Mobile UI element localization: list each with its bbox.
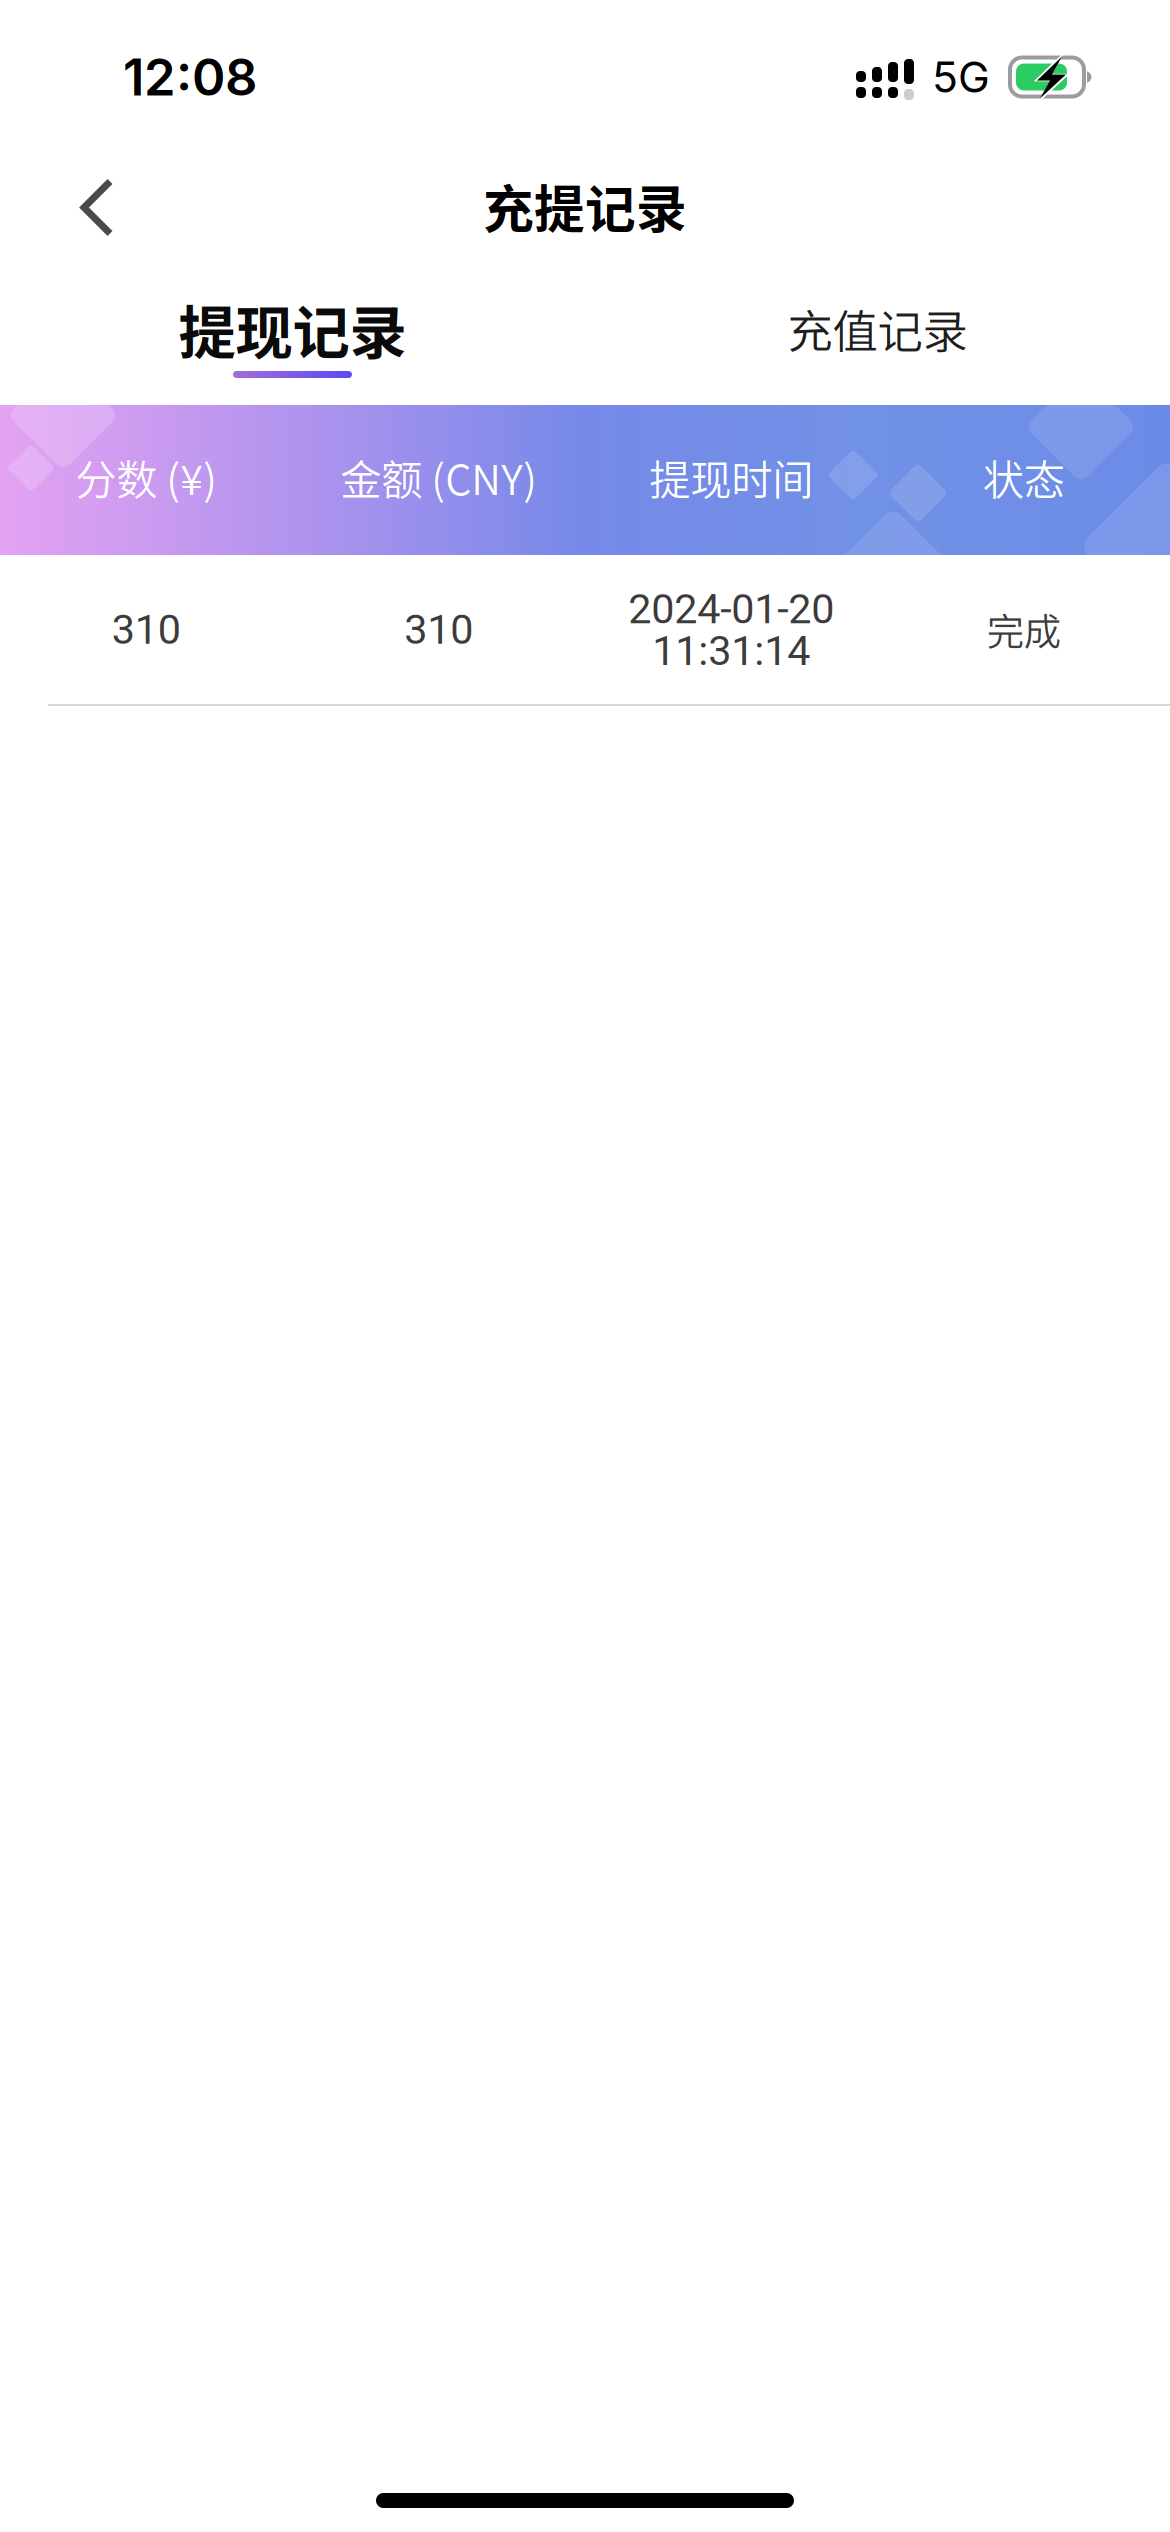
staticText: 5G	[932, 51, 990, 103]
staticText: 完成	[987, 602, 1061, 657]
button[interactable]: Back	[0, 131, 164, 274]
staticText: 充提记录	[483, 169, 687, 243]
staticText: 310	[112, 610, 181, 649]
staticText: 11:31:14	[652, 631, 810, 670]
staticText: 分数 (¥)	[75, 447, 217, 507]
staticText: 充值记录	[787, 296, 967, 362]
staticText: 状态	[983, 447, 1065, 507]
staticText: 12:08	[123, 46, 257, 108]
staticText: 金额 (CNY)	[340, 447, 537, 507]
staticText: 2024-01-20	[628, 590, 834, 629]
button[interactable]: 提现记录	[0, 270, 585, 405]
staticText: 提现记录	[178, 287, 406, 370]
staticText: 310	[404, 610, 473, 649]
button[interactable]: 充值记录	[585, 270, 1170, 405]
staticText: 提现时间	[649, 447, 813, 507]
